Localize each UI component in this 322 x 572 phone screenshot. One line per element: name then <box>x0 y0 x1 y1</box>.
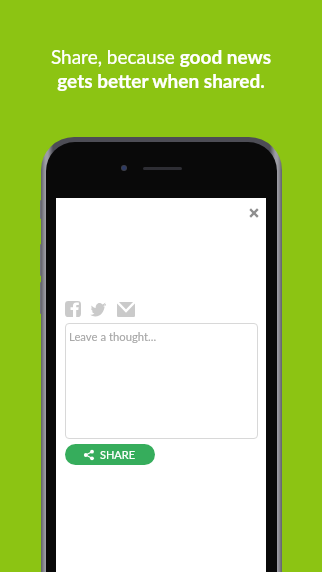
staticText: SHARE <box>100 448 136 461</box>
button[interactable]: Close <box>242 201 265 224</box>
button[interactable]: Twitter <box>90 300 106 318</box>
other: Email <box>117 302 135 317</box>
button[interactable]: SHARE <box>65 444 155 465</box>
button[interactable]: Facebook <box>65 300 81 318</box>
other: Facebook <box>65 301 81 317</box>
other: Twitter <box>91 303 106 316</box>
button[interactable]: Email <box>116 300 135 318</box>
staticText: Leave a thought... <box>69 330 157 344</box>
button[interactable]: Leave a thought... <box>65 323 258 439</box>
staticText: Share, because good news gets better whe… <box>41 45 281 92</box>
